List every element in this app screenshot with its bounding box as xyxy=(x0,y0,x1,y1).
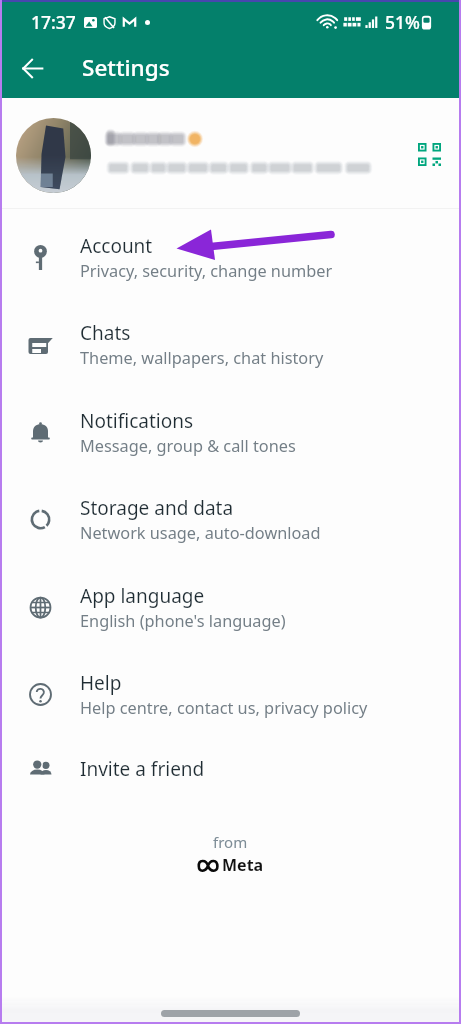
staticText: Account xyxy=(80,233,153,259)
staticText: 51% xyxy=(385,10,420,34)
staticText: 17:37 xyxy=(31,10,76,34)
button[interactable]: QR code xyxy=(0,98,461,208)
button[interactable]: QR code xyxy=(407,132,451,176)
staticText: Help xyxy=(80,670,122,696)
button[interactable]: Account xyxy=(0,219,461,295)
staticText: App language xyxy=(80,583,205,609)
staticText: Chats xyxy=(80,320,131,346)
staticText: Privacy, security, change number xyxy=(80,260,333,282)
staticText: Meta xyxy=(222,854,264,876)
staticText: Settings xyxy=(82,52,170,83)
staticText: Theme, wallpapers, chat history xyxy=(80,347,324,369)
staticText: English (phone's language) xyxy=(80,610,286,632)
button[interactable]: Chats xyxy=(0,306,461,382)
button[interactable]: Notifications xyxy=(0,394,461,470)
staticText: Invite a friend xyxy=(80,756,205,782)
staticText: Notifications xyxy=(80,408,194,434)
button[interactable]: Back xyxy=(10,46,54,90)
staticText: Storage and data xyxy=(80,495,234,521)
staticText: Network usage, auto-download xyxy=(80,522,321,544)
staticText: from xyxy=(213,832,248,852)
button[interactable]: App language xyxy=(0,569,461,645)
button[interactable]: Invite a friend xyxy=(0,738,461,800)
staticText: Help centre, contact us, privacy policy xyxy=(80,697,368,719)
staticText: Message, group & call tones xyxy=(80,435,296,457)
button[interactable]: Storage and data xyxy=(0,481,461,557)
button[interactable]: Help xyxy=(0,656,461,732)
